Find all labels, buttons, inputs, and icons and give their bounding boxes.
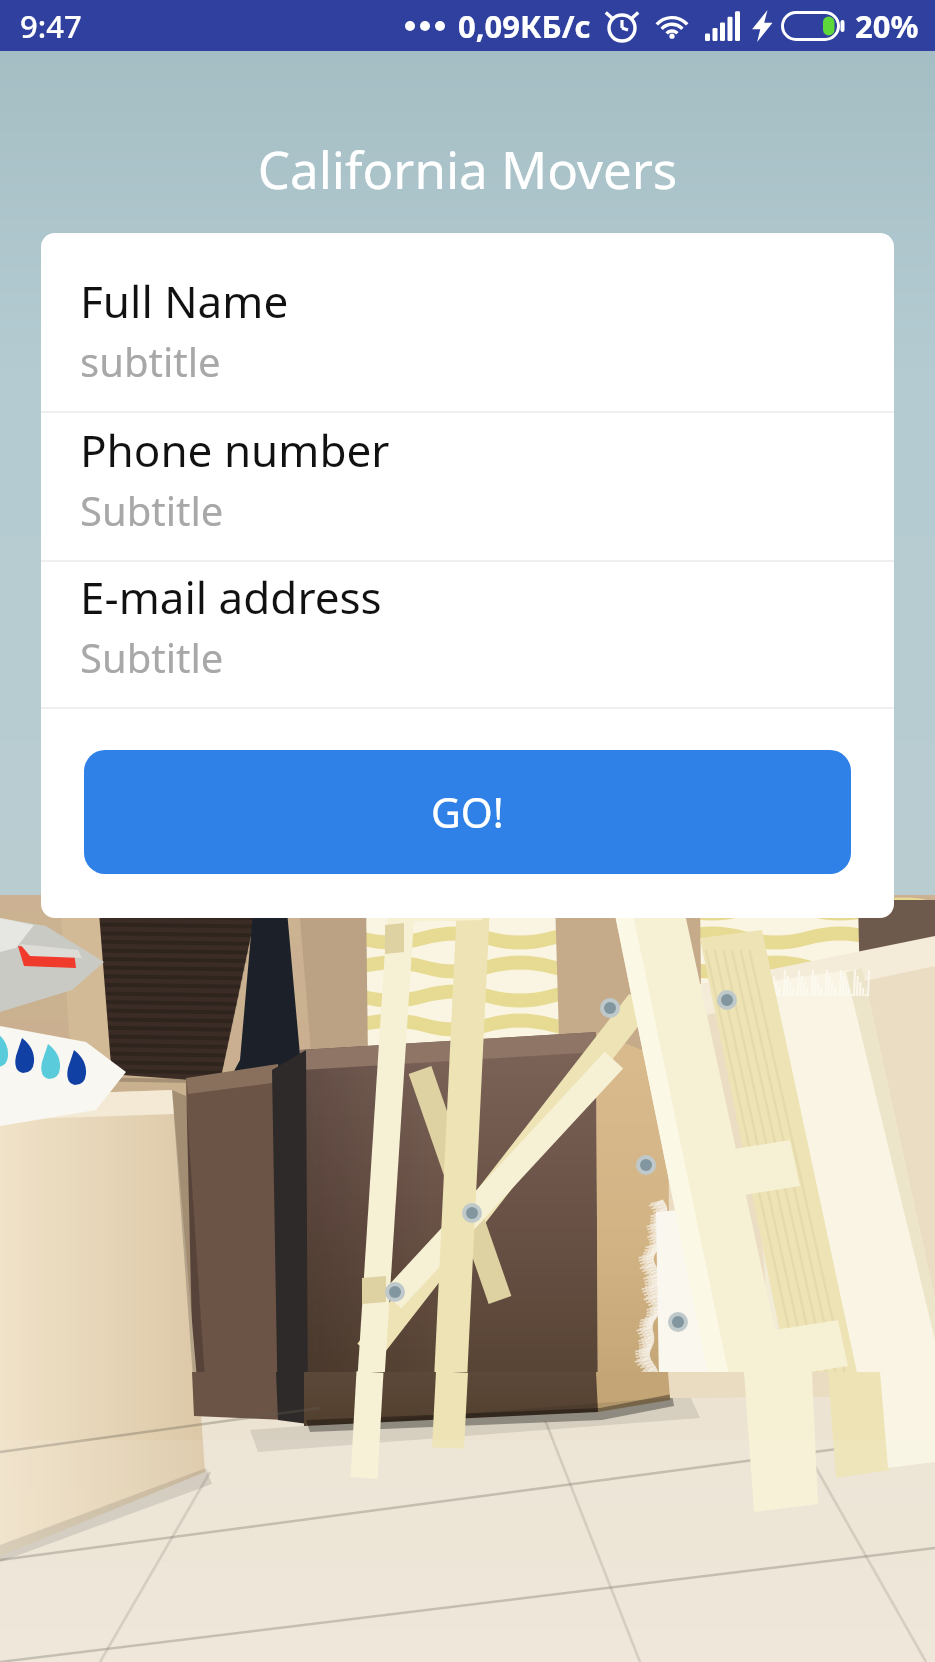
other: Alarm — [605, 9, 639, 43]
button[interactable]: Phone number — [41, 413, 894, 560]
staticText: GO! — [431, 784, 504, 840]
button[interactable]: GO! — [84, 750, 851, 874]
button[interactable]: E-mail address — [41, 562, 894, 707]
staticText: subtitle — [80, 334, 221, 388]
staticText: Subtitle — [80, 483, 224, 537]
staticText: 0,09КБ/с — [458, 5, 591, 47]
other: Battery 20 percent — [781, 11, 845, 41]
staticText: Phone number — [80, 420, 390, 480]
staticText: Full Name — [80, 271, 289, 331]
other: Signal — [705, 11, 741, 41]
staticText: 20% — [855, 5, 919, 47]
staticText: Subtitle — [80, 630, 224, 684]
staticText: California Movers — [0, 134, 935, 203]
staticText: E-mail address — [80, 567, 382, 627]
button[interactable]: Full Name — [41, 233, 894, 411]
staticText: 9:47 — [20, 5, 82, 47]
other: Wi-Fi — [653, 10, 691, 42]
